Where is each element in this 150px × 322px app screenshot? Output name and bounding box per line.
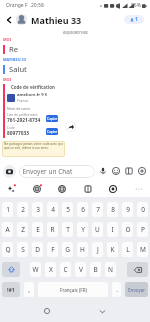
staticText: 3 (36, 205, 40, 214)
button[interactable]: Key (2, 262, 20, 277)
button[interactable]: Paramètres (106, 182, 120, 196)
button[interactable]: W (30, 262, 41, 277)
staticText: Re (9, 44, 19, 54)
staticText: T (66, 225, 70, 234)
staticText: Z (21, 225, 25, 234)
button[interactable]: V (75, 262, 86, 277)
staticText: S (21, 245, 25, 254)
button[interactable]: D (32, 242, 43, 257)
staticText: O (125, 225, 131, 234)
staticText: Français (FR) (60, 287, 87, 293)
button[interactable]: Q (2, 242, 13, 257)
button[interactable]: 9 (122, 202, 133, 217)
button[interactable]: Y (77, 222, 88, 237)
staticText: Envoyer un Chat (19, 167, 73, 176)
button[interactable]: Amis (124, 15, 144, 24)
button[interactable]: F (47, 242, 58, 257)
button[interactable]: 0 (137, 202, 148, 217)
staticText: Orange F (6, 2, 28, 9)
staticText: X (49, 265, 53, 274)
button[interactable]: Globe (55, 182, 69, 196)
button[interactable]: T (62, 222, 73, 237)
button[interactable]: 8 (107, 202, 118, 217)
staticText: W (32, 265, 39, 274)
staticText: 86% (131, 2, 141, 9)
staticText: 1 (135, 16, 138, 23)
staticText: 761-2921-8734 (7, 117, 41, 124)
button[interactable]: Copier (46, 115, 58, 122)
staticText: Ne partagez jamais votre code avec qui q… (4, 142, 63, 150)
staticText: G (65, 245, 70, 254)
button[interactable]: J (92, 242, 103, 257)
staticText: N (108, 265, 113, 274)
button[interactable]: U (92, 222, 103, 237)
staticText: 20:58 (31, 2, 44, 9)
staticText: A (5, 225, 10, 234)
button[interactable]: 1 (2, 202, 13, 217)
button[interactable]: G (62, 242, 73, 257)
button[interactable]: Sticker (124, 166, 134, 176)
staticText: Mathieu 33 (31, 14, 82, 26)
button[interactable]: Camera (3, 165, 16, 178)
staticText: 9 (126, 205, 130, 214)
button[interactable]: Home (40, 304, 54, 318)
button[interactable]: S (17, 242, 28, 257)
button[interactable]: R (47, 222, 58, 237)
button[interactable]: 7 (92, 202, 103, 217)
button[interactable]: Envoyer (125, 282, 148, 297)
button[interactable]: H (77, 242, 88, 257)
button[interactable]: Emoji (111, 166, 121, 176)
button[interactable]: Plus (132, 182, 146, 196)
staticText: Y (81, 225, 85, 234)
button[interactable]: C (60, 262, 71, 277)
button[interactable]: 4 (47, 202, 58, 217)
button[interactable]: Key (127, 262, 148, 277)
staticText: M (140, 245, 146, 254)
staticText: 7 (96, 205, 100, 214)
button[interactable]: Mes amis (4, 182, 18, 196)
button[interactable]: Add (137, 166, 147, 176)
staticText: . (116, 285, 118, 294)
button[interactable]: 3 (32, 202, 43, 217)
button[interactable]: P (137, 222, 148, 237)
button[interactable]: 2 (17, 202, 28, 217)
button[interactable]: . (112, 282, 121, 297)
button[interactable]: Souvenirs (81, 182, 95, 196)
button[interactable]: N (105, 262, 116, 277)
button[interactable]: E (32, 222, 43, 237)
staticText: F (51, 245, 55, 254)
staticText: P (141, 225, 145, 234)
staticText: Nom de carte (7, 106, 30, 111)
button[interactable]: !#1 (2, 282, 20, 297)
button[interactable]: Français (FR) (38, 282, 108, 297)
button[interactable]: B (90, 262, 101, 277)
staticText: I (111, 225, 114, 234)
staticText: V (79, 265, 83, 274)
button[interactable]: Back (3, 14, 14, 25)
staticText: E (36, 225, 40, 234)
button[interactable]: I (107, 222, 118, 237)
button[interactable]: , (24, 282, 34, 297)
button[interactable]: Carte (30, 182, 44, 196)
button[interactable]: Z (17, 222, 28, 237)
button[interactable]: Hide keyboard (95, 304, 109, 318)
staticText: 0 (141, 205, 145, 214)
staticText: H (80, 245, 85, 254)
button[interactable]: Share (65, 121, 76, 132)
staticText: MOI (3, 77, 12, 82)
staticText: 4 (51, 205, 55, 214)
button[interactable]: 5 (62, 202, 73, 217)
button[interactable]: Microphone (98, 166, 108, 176)
button[interactable]: Envoyer un Chat (19, 165, 95, 178)
button[interactable]: K (107, 242, 118, 257)
button[interactable]: L (122, 242, 133, 257)
staticText: 6 (81, 205, 85, 214)
button[interactable]: M (137, 242, 148, 257)
staticText: Code de vérification (11, 84, 55, 90)
button[interactable]: X (45, 262, 56, 277)
staticText: 1 (6, 205, 10, 214)
button[interactable]: A (2, 222, 13, 237)
button[interactable]: O (122, 222, 133, 237)
button[interactable]: 6 (77, 202, 88, 217)
button[interactable]: Copier (46, 128, 58, 135)
